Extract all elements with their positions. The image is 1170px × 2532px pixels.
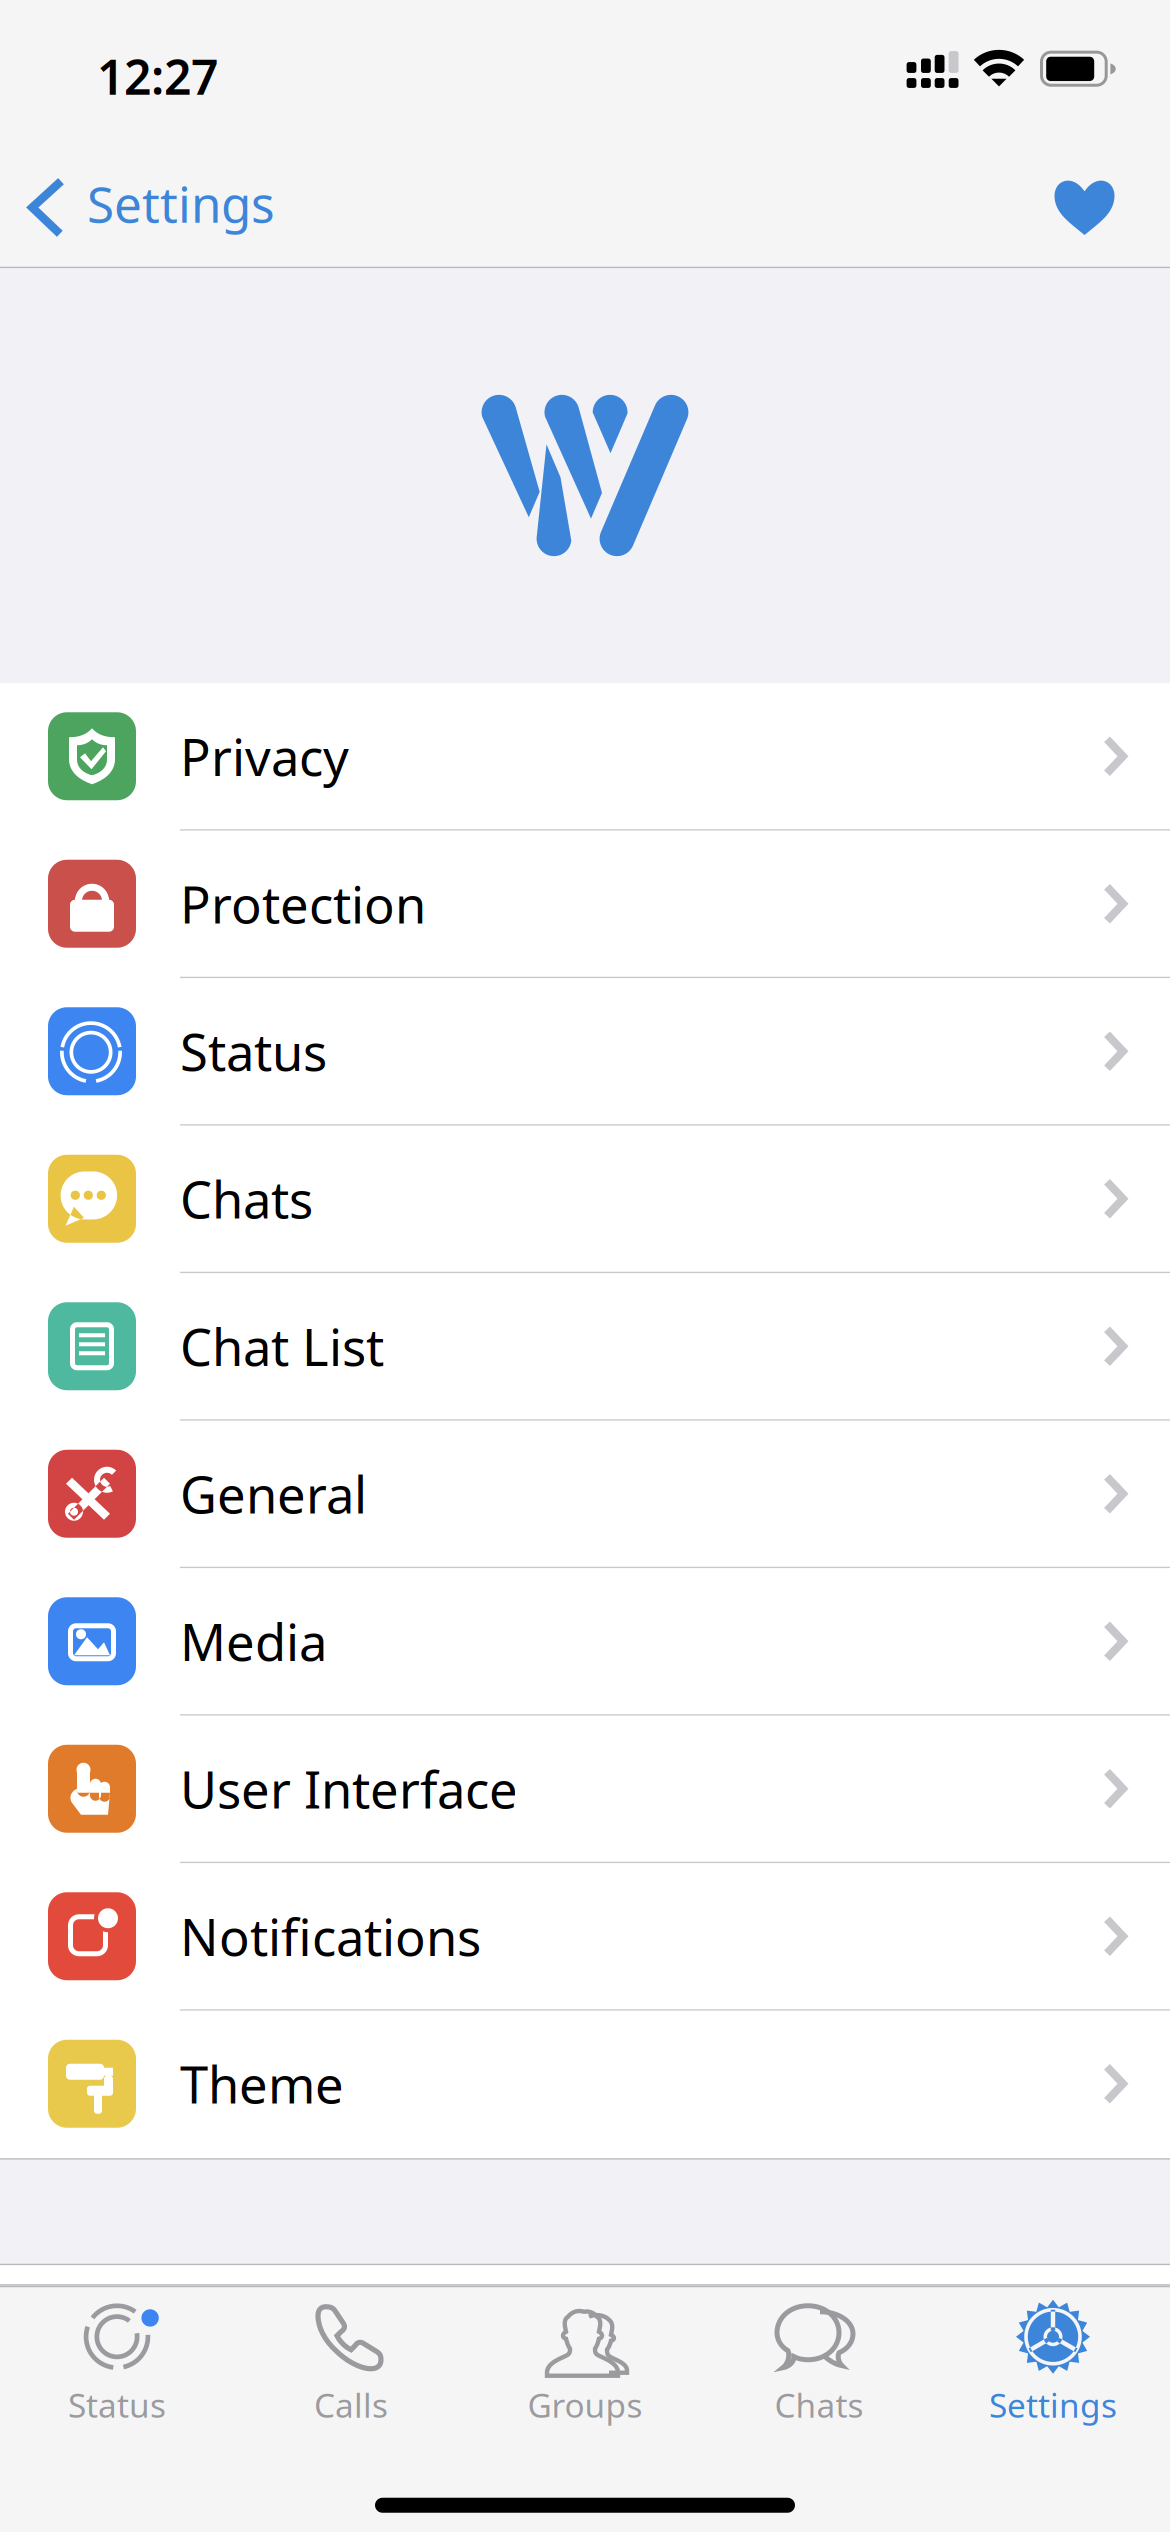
button[interactable]: Status <box>0 2286 234 2439</box>
staticText: Status <box>68 2383 166 2427</box>
staticText: Chats <box>774 2383 863 2427</box>
staticText: Groups <box>527 2383 642 2427</box>
button[interactable]: Calls <box>234 2286 468 2439</box>
button[interactable]: Chats <box>702 2286 936 2439</box>
staticText: Notifications <box>180 1903 481 1970</box>
button[interactable]: Media <box>0 1568 1170 1716</box>
staticText: Settings <box>989 2383 1117 2427</box>
button[interactable]: Status <box>0 978 1170 1126</box>
staticText: Settings <box>87 171 275 236</box>
staticText: Protection <box>180 870 426 937</box>
button[interactable]: Protection <box>0 831 1170 978</box>
button[interactable]: Favorites <box>1029 154 1170 261</box>
staticText: 12:27 <box>97 44 218 108</box>
button[interactable]: Chats <box>0 1126 1170 1273</box>
staticText: Privacy <box>180 723 349 790</box>
staticText: Chat List <box>180 1313 384 1380</box>
button[interactable]: General <box>0 1421 1170 1568</box>
button[interactable]: Chat List <box>0 1273 1170 1421</box>
staticText: Calls <box>314 2383 388 2427</box>
staticText: General <box>180 1460 367 1527</box>
button[interactable]: User Interface <box>0 1716 1170 1863</box>
button[interactable]: Settings <box>0 148 297 268</box>
button[interactable]: Theme <box>0 2011 1170 2158</box>
staticText: Chats <box>180 1165 313 1232</box>
button[interactable]: Notifications <box>0 1863 1170 2011</box>
button[interactable]: Privacy <box>0 683 1170 831</box>
button[interactable]: Groups <box>468 2286 702 2439</box>
button[interactable]: Settings <box>936 2286 1170 2439</box>
staticText: Theme <box>180 2050 344 2117</box>
staticText: Media <box>180 1608 327 1675</box>
staticText: Status <box>180 1018 327 1085</box>
staticText: User Interface <box>180 1755 518 1822</box>
